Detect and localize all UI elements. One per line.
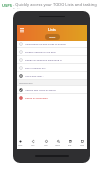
button[interactable]: Prepare update for the boar (17, 48, 87, 56)
staticText: USPS (2, 3, 12, 8)
staticText: Add a new item... (25, 75, 44, 78)
staticText: Prepare update for the boar (25, 51, 56, 54)
staticText: Understand the new scope of orderin (25, 43, 66, 46)
button[interactable]: More (76, 139, 87, 149)
button[interactable]: Menu (19, 27, 25, 33)
button[interactable]: Update new scope all workfl (17, 86, 87, 94)
staticText: Lists (48, 27, 56, 32)
staticText: Files (68, 144, 72, 146)
staticText: More (80, 144, 84, 146)
staticText: Alerts (18, 144, 23, 146)
staticText: Update new scope all workfl (25, 89, 56, 92)
button[interactable]: Search (52, 139, 63, 149)
button[interactable]: Delete all completed (17, 94, 87, 102)
staticText: Design an awesome marketing st (25, 59, 62, 62)
button[interactable]: Plan a seminar hol (17, 64, 87, 72)
button[interactable]: Files (64, 139, 75, 149)
button[interactable]: To-dos (45, 34, 60, 40)
staticText: COMPLETED ITEMS (19, 82, 33, 84)
staticText: Sync (31, 144, 35, 146)
button[interactable]: Alerts (15, 139, 26, 149)
staticText: - Quickly access your TODO Lists and tas… (12, 2, 103, 9)
staticText: Chat (44, 144, 48, 146)
staticText: Plan a seminar hol (25, 67, 46, 70)
staticText: Delete all completed (25, 97, 48, 100)
button[interactable]: Add a new item... (17, 72, 87, 80)
button[interactable]: Chat (40, 139, 51, 149)
button[interactable]: Design an awesome marketing st (17, 56, 87, 64)
staticText: To-dos (49, 36, 56, 39)
button[interactable]: Sync (27, 139, 38, 149)
button[interactable]: Understand the new scope of orderin (17, 40, 87, 48)
staticText: Search (55, 144, 61, 146)
